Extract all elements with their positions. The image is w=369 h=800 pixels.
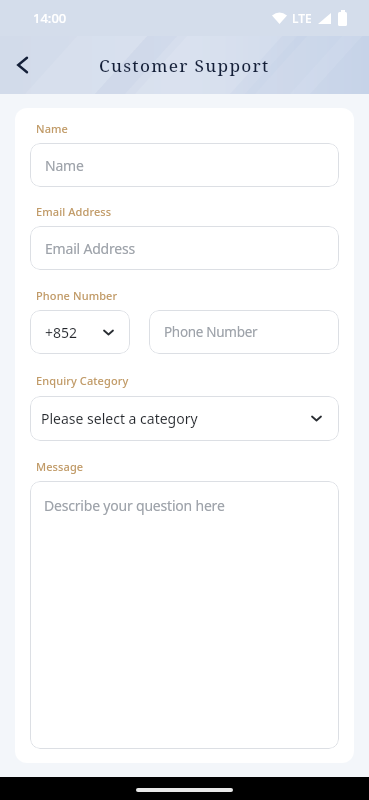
staticText: Email Address [45,239,135,258]
staticText: Please select a category [41,409,198,428]
button[interactable]: Phone Number [149,310,339,354]
staticText: Name [36,121,68,136]
button[interactable]: +852 [30,310,130,354]
staticText: 14:00 [33,9,67,27]
staticText: Phone Number [36,288,118,303]
staticText: Phone Number [164,323,258,341]
button[interactable]: Please select a category [30,396,339,441]
button[interactable]: Name [30,143,339,187]
button[interactable]: Describe your question here [30,481,339,749]
staticText: +852 [45,323,78,342]
button[interactable]: Email Address [30,226,339,270]
staticText: Email Address [36,204,112,219]
staticText: Message [36,459,84,474]
staticText: Customer Support [99,54,270,77]
staticText: Describe your question here [44,496,225,515]
staticText: Enquiry Category [36,373,129,388]
staticText: Name [45,156,84,175]
staticText: LTE [292,10,312,26]
button[interactable] [6,49,38,81]
